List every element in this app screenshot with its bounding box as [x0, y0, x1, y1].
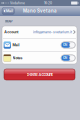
button[interactable]: Account	[2, 26, 77, 38]
button[interactable]: Mail	[2, 7, 14, 14]
staticText: Notes	[12, 56, 22, 60]
staticText: Account	[4, 30, 18, 34]
staticText: ON	[63, 56, 67, 60]
staticText: 16:20	[44, 1, 52, 5]
staticText: info@mano-svetarium.it	[33, 30, 72, 34]
staticText: Mail	[6, 9, 13, 13]
staticText: Mano Svetana	[23, 8, 57, 14]
staticText: Delete Account	[26, 72, 52, 77]
staticText: Mail	[12, 43, 19, 47]
button[interactable]: Notes	[2, 52, 77, 64]
button[interactable]: Mail	[2, 39, 77, 51]
staticText: ON	[63, 43, 67, 47]
staticText: Vodafone	[10, 1, 25, 5]
button[interactable]: Delete Account	[4, 69, 75, 80]
staticText: IMAP	[4, 19, 12, 23]
